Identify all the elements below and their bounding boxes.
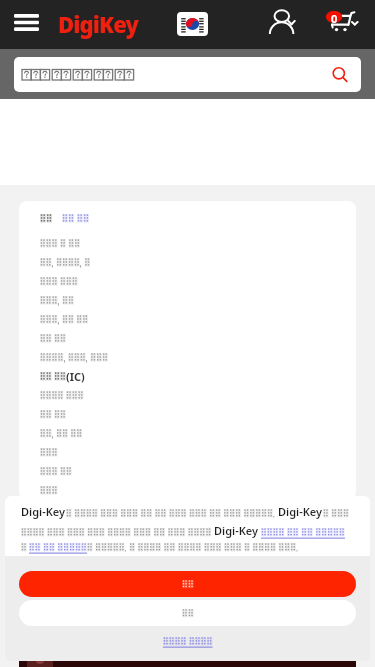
button[interactable] xyxy=(40,253,356,272)
button[interactable] xyxy=(19,600,356,626)
button[interactable] xyxy=(40,272,356,291)
button[interactable] xyxy=(40,329,356,348)
button[interactable] xyxy=(19,571,356,597)
button[interactable]: DigiKey xyxy=(58,9,138,39)
button[interactable] xyxy=(19,649,356,667)
button[interactable] xyxy=(14,57,361,92)
button[interactable] xyxy=(40,481,356,500)
staticText: (IC) xyxy=(66,369,85,384)
button[interactable]: Region: Korea xyxy=(177,12,208,36)
button[interactable] xyxy=(40,443,356,462)
staticText: Digi-Key xyxy=(21,504,66,519)
button[interactable]: Account xyxy=(266,6,302,40)
staticText: Digi-Key xyxy=(278,504,323,519)
button[interactable] xyxy=(40,234,356,253)
button[interactable]: Shopping cart xyxy=(318,4,366,42)
button[interactable] xyxy=(40,386,356,405)
button[interactable] xyxy=(40,405,356,424)
button[interactable] xyxy=(40,213,89,225)
button[interactable]: Open navigation menu xyxy=(4,5,48,45)
button[interactable] xyxy=(40,310,356,329)
staticText: 0 xyxy=(331,11,338,26)
button[interactable] xyxy=(40,462,356,481)
button[interactable]: (IC) xyxy=(40,367,356,386)
button[interactable] xyxy=(19,636,356,647)
button[interactable] xyxy=(40,348,356,367)
button[interactable] xyxy=(40,424,356,443)
button[interactable] xyxy=(40,291,356,310)
staticText: Digi-Key xyxy=(214,523,259,538)
